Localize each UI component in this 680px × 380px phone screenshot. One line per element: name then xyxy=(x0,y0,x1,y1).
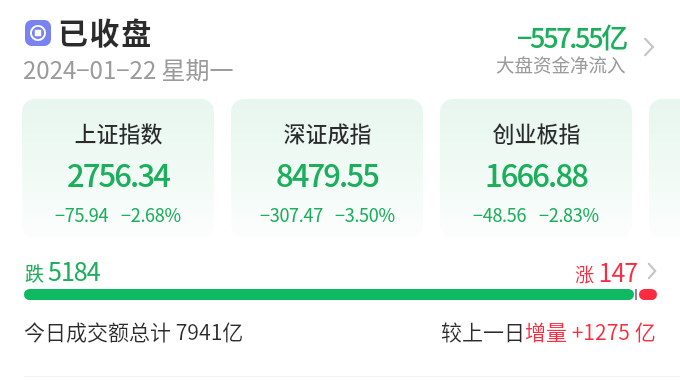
staticText: 2756.34 xyxy=(67,151,169,196)
staticText: 较上一日增量 +1275 亿 xyxy=(441,316,656,346)
staticText: −307.47 xyxy=(260,201,323,227)
staticText: 大盘资金净流入 xyxy=(496,51,626,78)
staticText: 上证指数 xyxy=(74,116,163,148)
button[interactable]: 跌 5184 xyxy=(25,252,100,288)
staticText: 2024−01−22 星期一 xyxy=(23,51,234,86)
button[interactable]: 上证指数 xyxy=(22,99,214,238)
staticText: 1666.88 xyxy=(485,151,587,196)
other: 资金流入详情 xyxy=(635,33,663,61)
button[interactable]: 创业板指 xyxy=(440,99,632,238)
staticText: −48.56 xyxy=(473,201,527,227)
staticText: −2.83% xyxy=(539,201,599,227)
button[interactable]: 深证成指 xyxy=(231,99,423,238)
button[interactable]: −557.55亿 xyxy=(496,17,661,83)
staticText: 深证成指 xyxy=(283,116,372,148)
staticText: −557.55亿 xyxy=(517,17,626,56)
staticText: 创业板指 xyxy=(492,116,581,148)
staticText: 8479.55 xyxy=(276,151,378,196)
other: 涨跌家数详情 xyxy=(639,258,665,284)
button[interactable] xyxy=(649,99,680,238)
staticText: −75.94 xyxy=(55,201,109,227)
staticText: −2.68% xyxy=(121,201,181,227)
button[interactable]: 已收盘 xyxy=(25,11,153,54)
staticText: −3.50% xyxy=(335,201,395,227)
staticText: 涨 147 xyxy=(575,253,638,289)
staticText: 已收盘 xyxy=(58,9,153,52)
staticText: 跌 5184 xyxy=(25,252,100,288)
button[interactable]: 涨 147 xyxy=(575,253,665,289)
staticText: 今日成交额总计 7941亿 xyxy=(24,316,244,346)
